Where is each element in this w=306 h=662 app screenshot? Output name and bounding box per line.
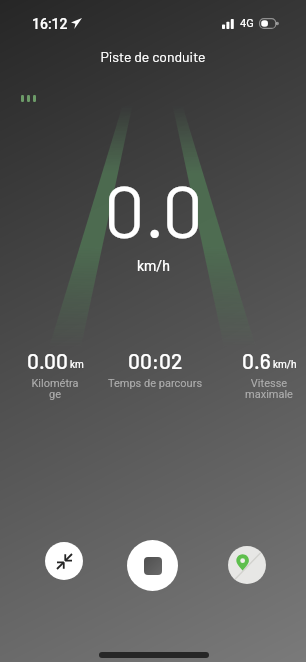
- staticText: ge: [27, 388, 83, 401]
- button[interactable]: Ma position: [228, 546, 266, 584]
- staticText: maximale: [241, 388, 297, 401]
- staticText: 00:02: [128, 348, 183, 373]
- staticText: Temps de parcours: [105, 377, 205, 390]
- staticText: 0.0: [104, 166, 203, 252]
- staticText: Vitesse: [241, 377, 297, 390]
- staticText: 4G: [240, 17, 254, 30]
- button[interactable]: Réduire: [45, 542, 83, 580]
- staticText: Kilométra: [27, 377, 83, 390]
- staticText: 0.6: [242, 348, 271, 373]
- staticText: 0.00: [27, 348, 68, 373]
- staticText: km/h: [273, 359, 297, 371]
- staticText: Piste de conduite: [100, 48, 206, 65]
- staticText: 16:12: [32, 16, 68, 32]
- staticText: km: [70, 359, 84, 371]
- button[interactable]: Arrêter: [127, 540, 178, 591]
- staticText: km/h: [137, 258, 170, 274]
